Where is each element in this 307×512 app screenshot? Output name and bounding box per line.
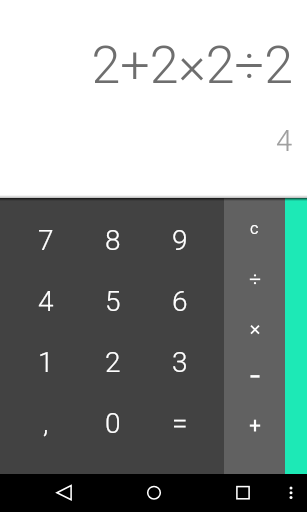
button[interactable]: Delete xyxy=(285,198,307,474)
button[interactable]: Plus xyxy=(224,401,285,450)
staticText: 2 xyxy=(105,346,121,379)
button[interactable]: = xyxy=(146,393,213,454)
button[interactable]: Recent apps xyxy=(219,474,267,512)
staticText: , xyxy=(43,407,49,440)
staticText: 2+2×2÷2 xyxy=(0,35,293,96)
button[interactable]: 4 xyxy=(12,271,79,332)
button[interactable]: C xyxy=(224,205,285,254)
staticText: 5 xyxy=(105,285,121,318)
button[interactable]: 9 xyxy=(146,210,213,271)
button[interactable]: 0 xyxy=(79,393,146,454)
staticText: 1 xyxy=(38,346,54,379)
staticText: 6 xyxy=(172,285,188,318)
staticText: C xyxy=(250,222,259,237)
button[interactable]: , xyxy=(12,393,79,454)
staticText: = xyxy=(172,407,188,440)
button[interactable]: 6 xyxy=(146,271,213,332)
button[interactable]: 8 xyxy=(79,210,146,271)
staticText: 4 xyxy=(38,285,54,318)
staticText: 0 xyxy=(105,407,121,440)
staticText: 3 xyxy=(172,346,188,379)
button[interactable]: Back xyxy=(40,474,88,512)
staticText: 4 xyxy=(0,124,292,158)
button[interactable]: 1 xyxy=(12,332,79,393)
button[interactable]: Multiply xyxy=(224,303,285,352)
button[interactable]: 2 xyxy=(79,332,146,393)
button[interactable]: Home xyxy=(130,474,178,512)
button[interactable]: Minus xyxy=(224,352,285,401)
button[interactable]: 3 xyxy=(146,332,213,393)
button[interactable]: 5 xyxy=(79,271,146,332)
button[interactable]: More options xyxy=(277,474,305,512)
button[interactable]: Divide xyxy=(224,254,285,303)
staticText: 8 xyxy=(105,224,121,257)
staticText: 9 xyxy=(172,224,188,257)
button[interactable]: 7 xyxy=(12,210,79,271)
staticText: 7 xyxy=(38,224,54,257)
